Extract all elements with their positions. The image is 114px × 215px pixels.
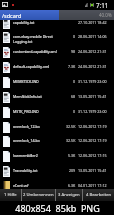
button[interactable]: 1 Hilfe xyxy=(0,189,21,201)
staticText: 27.10.2011 18:42 xyxy=(78,20,107,25)
staticText: 7.3K xyxy=(68,64,76,69)
staticText: 5.3K xyxy=(68,153,76,158)
staticText: 31.12.1979 23:00 xyxy=(78,79,107,84)
staticText: 13.05.2011 15:41 xyxy=(78,168,107,173)
button[interactable]: overclock_12.ko xyxy=(0,122,114,137)
button[interactable]: lowmemkiller2 xyxy=(0,151,114,166)
staticText: 24.06.2012 21:31 xyxy=(78,49,107,54)
button[interactable]: MemStickInfo.txt xyxy=(0,92,114,107)
staticText: 209 xyxy=(69,168,76,173)
button[interactable]: /sdcard xyxy=(0,10,114,20)
staticText: 24.06.2012 21:31 xyxy=(78,64,107,69)
button[interactable]: capability.txt xyxy=(0,20,114,33)
staticText: overclock_14.ko xyxy=(13,138,63,143)
button[interactable]: MSTK_PRO.IND xyxy=(0,107,114,122)
staticText: 2 Umbenennen xyxy=(23,192,54,198)
staticText: 32.5K xyxy=(66,138,76,143)
staticText: 12.06.2012 17:19 xyxy=(78,124,107,129)
staticText: 6.3K xyxy=(68,183,76,188)
staticText: overclock_12.ko xyxy=(13,124,63,129)
staticText: Traceability.txt xyxy=(13,168,63,173)
staticText: MSTK_PRO.IND xyxy=(13,109,63,114)
staticText: 0 xyxy=(73,34,76,39)
staticText: 13.05.2011 15:41 xyxy=(78,94,107,99)
staticText: com.ebay.mobile Direct Logging.txt xyxy=(13,34,63,44)
staticText: default-capability.xml xyxy=(13,64,63,69)
staticText: 3 Anzeigen xyxy=(58,192,80,198)
button[interactable]: MEMSTICK.IND xyxy=(0,77,114,92)
staticText: MemStickInfo.txt xyxy=(13,94,63,99)
button[interactable]: vCont.vcf xyxy=(0,181,114,189)
button[interactable]: customized-capability.xml xyxy=(0,47,114,62)
staticText: 68 xyxy=(71,94,76,99)
staticText: 98 xyxy=(71,49,76,54)
staticText: 28.06.2011 14:06 xyxy=(78,34,107,39)
button[interactable]: 4 Bearbeiten xyxy=(83,189,114,201)
staticText: 0 xyxy=(73,109,76,114)
button[interactable]: overclock_14.ko xyxy=(0,136,114,151)
staticText: 480x854 85kb PNG xyxy=(15,202,100,214)
staticText: 0 xyxy=(73,79,76,84)
staticText: MEMSTICK.IND xyxy=(13,79,63,84)
button[interactable]: 3 Anzeigen xyxy=(56,189,82,201)
staticText: vCont.vcf xyxy=(13,183,63,188)
staticText: 4 Bearbeiten xyxy=(86,192,112,198)
button[interactable]: 2 Umbenennen xyxy=(22,189,55,201)
button[interactable]: com.ebay.mobile Direct Logging.txt xyxy=(0,32,114,47)
staticText: 12.06.2012 17:19 xyxy=(78,138,107,143)
staticText: 40.0% xyxy=(99,12,112,18)
staticText: 12.06.2012 17:15 xyxy=(78,153,107,158)
button[interactable]: Traceability.txt xyxy=(0,166,114,181)
staticText: /sdcard xyxy=(2,12,22,19)
button[interactable]: default-capability.xml xyxy=(0,62,114,77)
staticText: 7:11 xyxy=(96,1,109,9)
staticText: capability.txt xyxy=(13,20,63,25)
staticText: 32.5K xyxy=(66,124,76,129)
staticText: 31.12.1979 23:00 xyxy=(78,109,107,114)
other: Screenshot captured xyxy=(2,2,8,7)
staticText: 1 Hilfe xyxy=(4,192,17,198)
staticText: 04.01.2011 17:12 xyxy=(78,183,107,188)
staticText: lowmemkiller2 xyxy=(13,153,63,158)
staticText: customized-capability.xml xyxy=(13,49,63,54)
